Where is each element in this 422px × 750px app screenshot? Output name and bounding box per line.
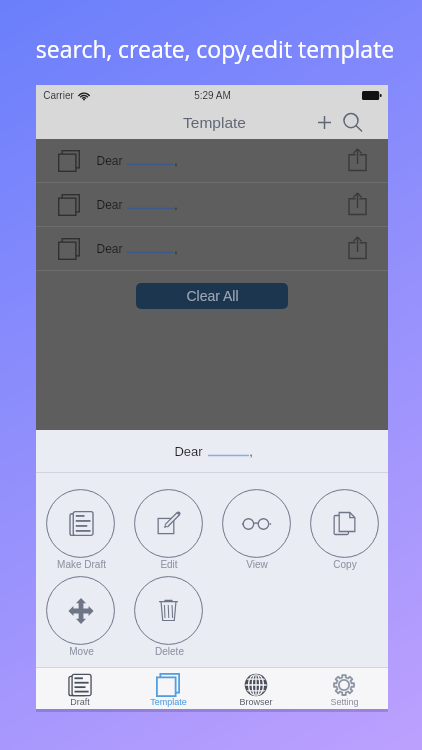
- staticText: 5:29 AM: [194, 90, 231, 101]
- button[interactable]: Browser: [212, 668, 300, 707]
- button[interactable]: Dear: [36, 227, 388, 270]
- button[interactable]: Clear All: [136, 283, 288, 309]
- button[interactable]: Edit: [124, 489, 212, 570]
- staticText: Move: [69, 646, 94, 657]
- staticText: search, create, copy,edit template: [4, 33, 422, 64]
- staticText: ,: [174, 198, 178, 211]
- staticText: Copy: [333, 559, 357, 570]
- button[interactable]: Dear: [36, 183, 388, 226]
- staticText: Template: [150, 697, 187, 707]
- button[interactable]: Draft: [36, 668, 124, 707]
- staticText: ,: [174, 242, 178, 255]
- staticText: Make Draft: [57, 559, 106, 570]
- button[interactable]: Delete: [124, 576, 212, 657]
- staticText: Draft: [70, 697, 90, 707]
- staticText: Edit: [160, 559, 178, 570]
- staticText: View: [246, 559, 268, 570]
- staticText: Delete: [155, 646, 184, 657]
- button[interactable]: Copy: [300, 489, 388, 570]
- staticText: Template: [183, 114, 246, 131]
- button[interactable]: Share: [339, 187, 375, 223]
- button[interactable]: Move: [36, 576, 124, 657]
- staticText: Dear: [96, 198, 123, 211]
- button[interactable]: Make Draft: [36, 489, 124, 570]
- staticText: Dear: [96, 242, 123, 255]
- staticText: Clear All: [186, 288, 239, 304]
- staticText: Dear: [96, 154, 123, 167]
- staticText: Browser: [239, 697, 273, 707]
- button[interactable]: Share: [339, 231, 375, 267]
- button[interactable]: Template: [124, 668, 212, 707]
- button[interactable]: Dear: [36, 139, 388, 182]
- staticText: ,: [249, 444, 253, 459]
- button[interactable]: Setting: [300, 668, 388, 707]
- staticText: Dear: [174, 444, 203, 459]
- button[interactable]: View: [212, 489, 300, 570]
- button[interactable]: Add template: [312, 110, 336, 134]
- button[interactable]: Search: [340, 110, 364, 134]
- button[interactable]: Share: [339, 143, 375, 179]
- staticText: Carrier: [43, 90, 74, 101]
- staticText: Setting: [330, 697, 359, 707]
- staticText: ,: [174, 154, 178, 167]
